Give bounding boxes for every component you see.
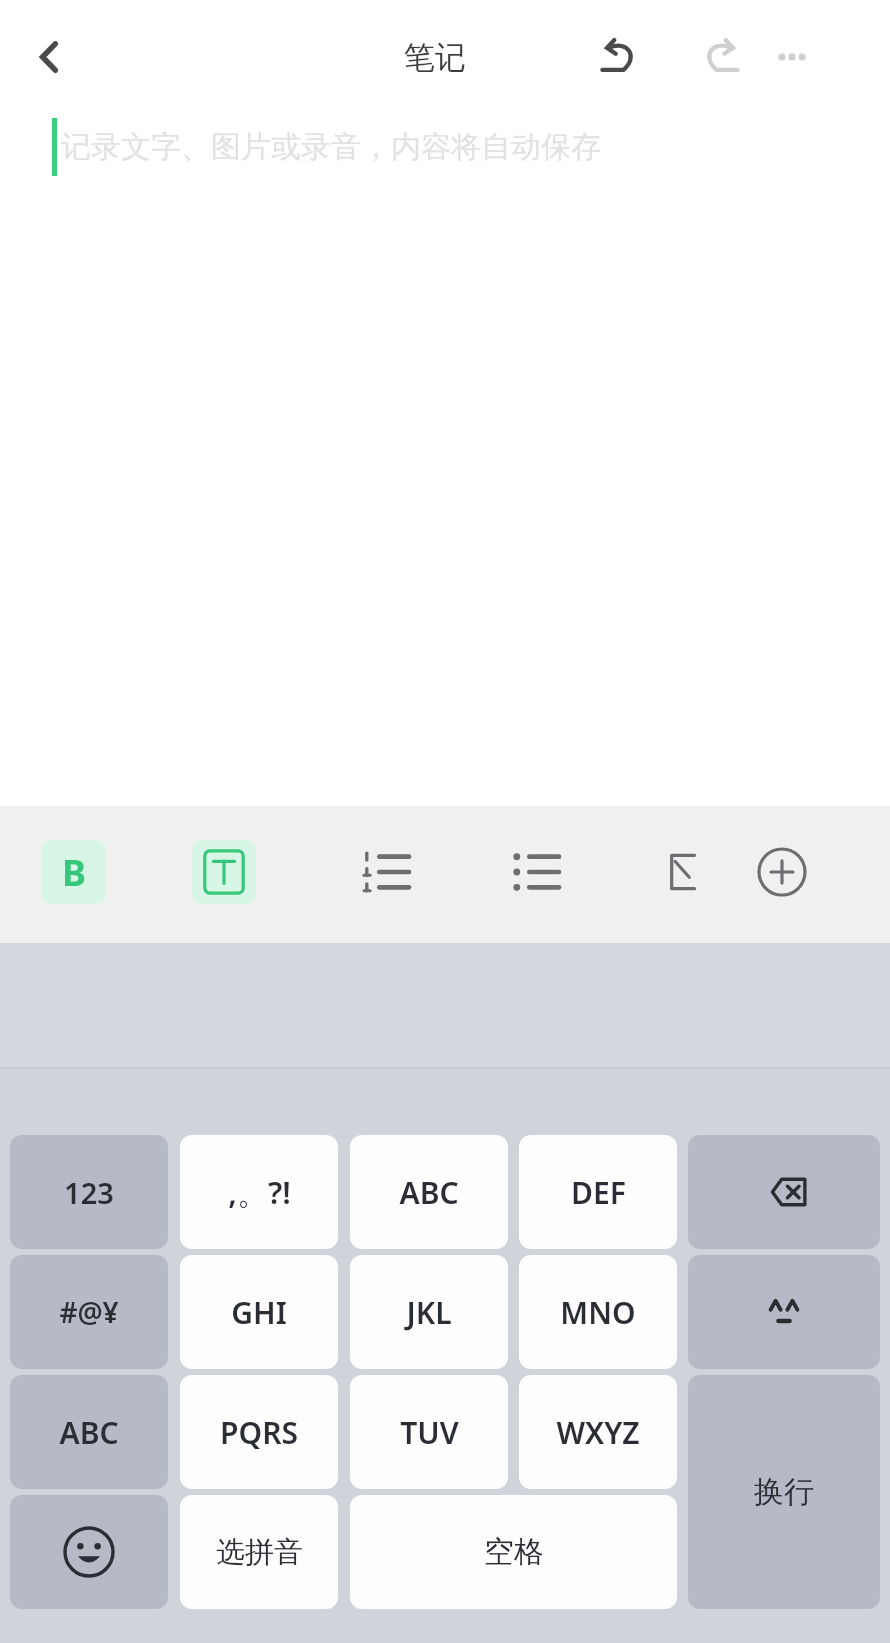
button[interactable]: WXYZ: [519, 1375, 677, 1489]
button[interactable]: Shift: [688, 1255, 880, 1369]
button[interactable]: MNO: [519, 1255, 677, 1369]
staticText: 空格: [484, 1533, 544, 1571]
staticText: 笔记: [404, 38, 466, 77]
button[interactable]: TUV: [350, 1375, 508, 1489]
button[interactable]: ABC: [350, 1135, 508, 1249]
staticText: B: [62, 848, 86, 897]
button[interactable]: Back: [10, 17, 90, 97]
button[interactable]: 空格: [350, 1495, 677, 1609]
button[interactable]: Format: [490, 824, 582, 920]
button[interactable]: JKL: [350, 1255, 508, 1369]
button[interactable]: Redo: [682, 17, 762, 97]
button[interactable]: Format: [28, 824, 120, 920]
staticText: GHI: [231, 1292, 287, 1333]
button[interactable]: Format: [340, 824, 432, 920]
staticText: WXYZ: [556, 1412, 640, 1453]
button[interactable]: Format: [178, 824, 270, 920]
button[interactable]: Emoji: [10, 1495, 168, 1609]
button[interactable]: Format: [736, 824, 828, 920]
button[interactable]: 123: [10, 1135, 168, 1249]
staticText: DEF: [571, 1172, 626, 1213]
staticText: ABC: [59, 1412, 119, 1453]
staticText: ,。?!: [228, 1171, 291, 1213]
button[interactable]: ABC: [10, 1375, 168, 1489]
staticText: PQRS: [220, 1412, 298, 1453]
button[interactable]: 选拼音: [180, 1495, 338, 1609]
button[interactable]: More options: [752, 17, 832, 97]
staticText: 换行: [754, 1473, 814, 1511]
staticText: TUV: [400, 1412, 459, 1453]
button[interactable]: 换行: [688, 1375, 880, 1609]
staticText: 记录文字、图片或录音，内容将自动保存: [61, 128, 601, 166]
button[interactable]: Delete: [688, 1135, 880, 1249]
staticText: MNO: [560, 1292, 636, 1333]
button[interactable]: #@¥: [10, 1255, 168, 1369]
button[interactable]: GHI: [180, 1255, 338, 1369]
staticText: JKL: [406, 1292, 452, 1333]
button[interactable]: DEF: [519, 1135, 677, 1249]
button[interactable]: Format: [638, 824, 730, 920]
staticText: ABC: [399, 1172, 459, 1213]
staticText: #@¥: [59, 1293, 119, 1331]
button[interactable]: Undo: [578, 17, 658, 97]
button[interactable]: PQRS: [180, 1375, 338, 1489]
staticText: 选拼音: [216, 1534, 303, 1571]
staticText: 123: [64, 1173, 114, 1212]
button[interactable]: ,。?!: [180, 1135, 338, 1249]
